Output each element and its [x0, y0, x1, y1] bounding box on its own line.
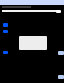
button[interactable]	[19, 36, 47, 50]
button[interactable]: Card	[58, 75, 64, 79]
button[interactable]: Card	[58, 51, 64, 55]
button[interactable]: Message	[3, 30, 8, 33]
button[interactable]: Action	[56, 10, 61, 13]
button[interactable]: Message	[3, 51, 8, 54]
button[interactable]: Message	[3, 23, 8, 27]
